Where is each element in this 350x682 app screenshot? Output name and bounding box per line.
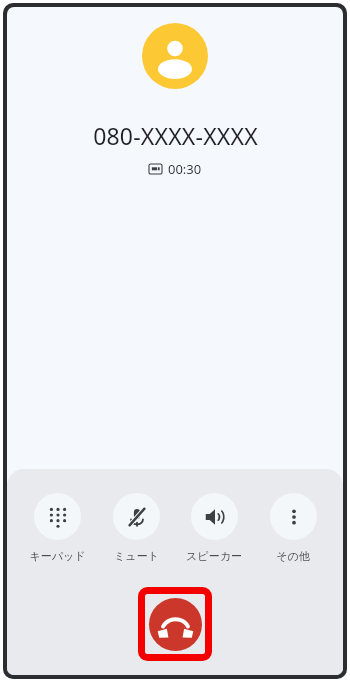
staticText: ミュート	[114, 549, 159, 563]
staticText: 080-XXXX-XXXX	[93, 120, 258, 151]
button[interactable]: Keypad	[20, 493, 94, 563]
staticText: 00:30	[168, 160, 202, 178]
staticText: キーパッド	[29, 549, 86, 563]
other: Contact avatar	[142, 23, 208, 89]
button[interactable]: End call	[138, 587, 212, 661]
button[interactable]: More options	[256, 493, 330, 563]
button[interactable]: Mute	[99, 493, 173, 563]
staticText: その他	[276, 549, 310, 563]
button[interactable]: Speaker	[177, 493, 251, 563]
staticText: スピーカー	[186, 549, 242, 563]
